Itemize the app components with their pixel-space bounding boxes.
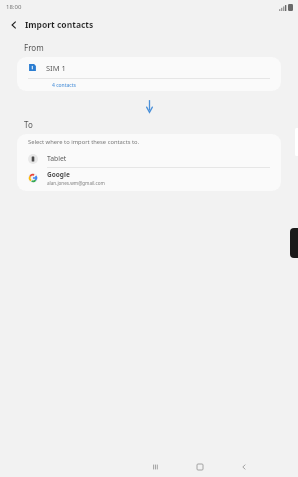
staticText: Select where to import these contacts to…	[28, 138, 140, 146]
staticText: 4 contacts	[52, 82, 76, 89]
staticText: SIM 1	[46, 63, 66, 73]
button[interactable]: Edge panel handle	[290, 228, 298, 258]
staticText: To	[24, 119, 33, 130]
button[interactable]: Back	[6, 17, 22, 33]
button[interactable]: Google	[28, 168, 281, 188]
staticText: 18:00	[6, 3, 22, 11]
button[interactable]: Tablet	[28, 150, 281, 167]
staticText: Import contacts	[25, 19, 94, 31]
other: Transfer direction	[144, 99, 155, 113]
staticText: alan.jones.wm@gmail.com	[47, 180, 105, 186]
button[interactable]: Home	[189, 457, 211, 477]
button[interactable]: Recent apps	[145, 457, 167, 477]
staticText: Google	[47, 170, 70, 179]
button[interactable]: SIM 1	[17, 57, 281, 91]
staticText: Tablet	[47, 154, 67, 163]
button[interactable]: Back	[233, 457, 255, 477]
staticText: From	[24, 42, 44, 53]
